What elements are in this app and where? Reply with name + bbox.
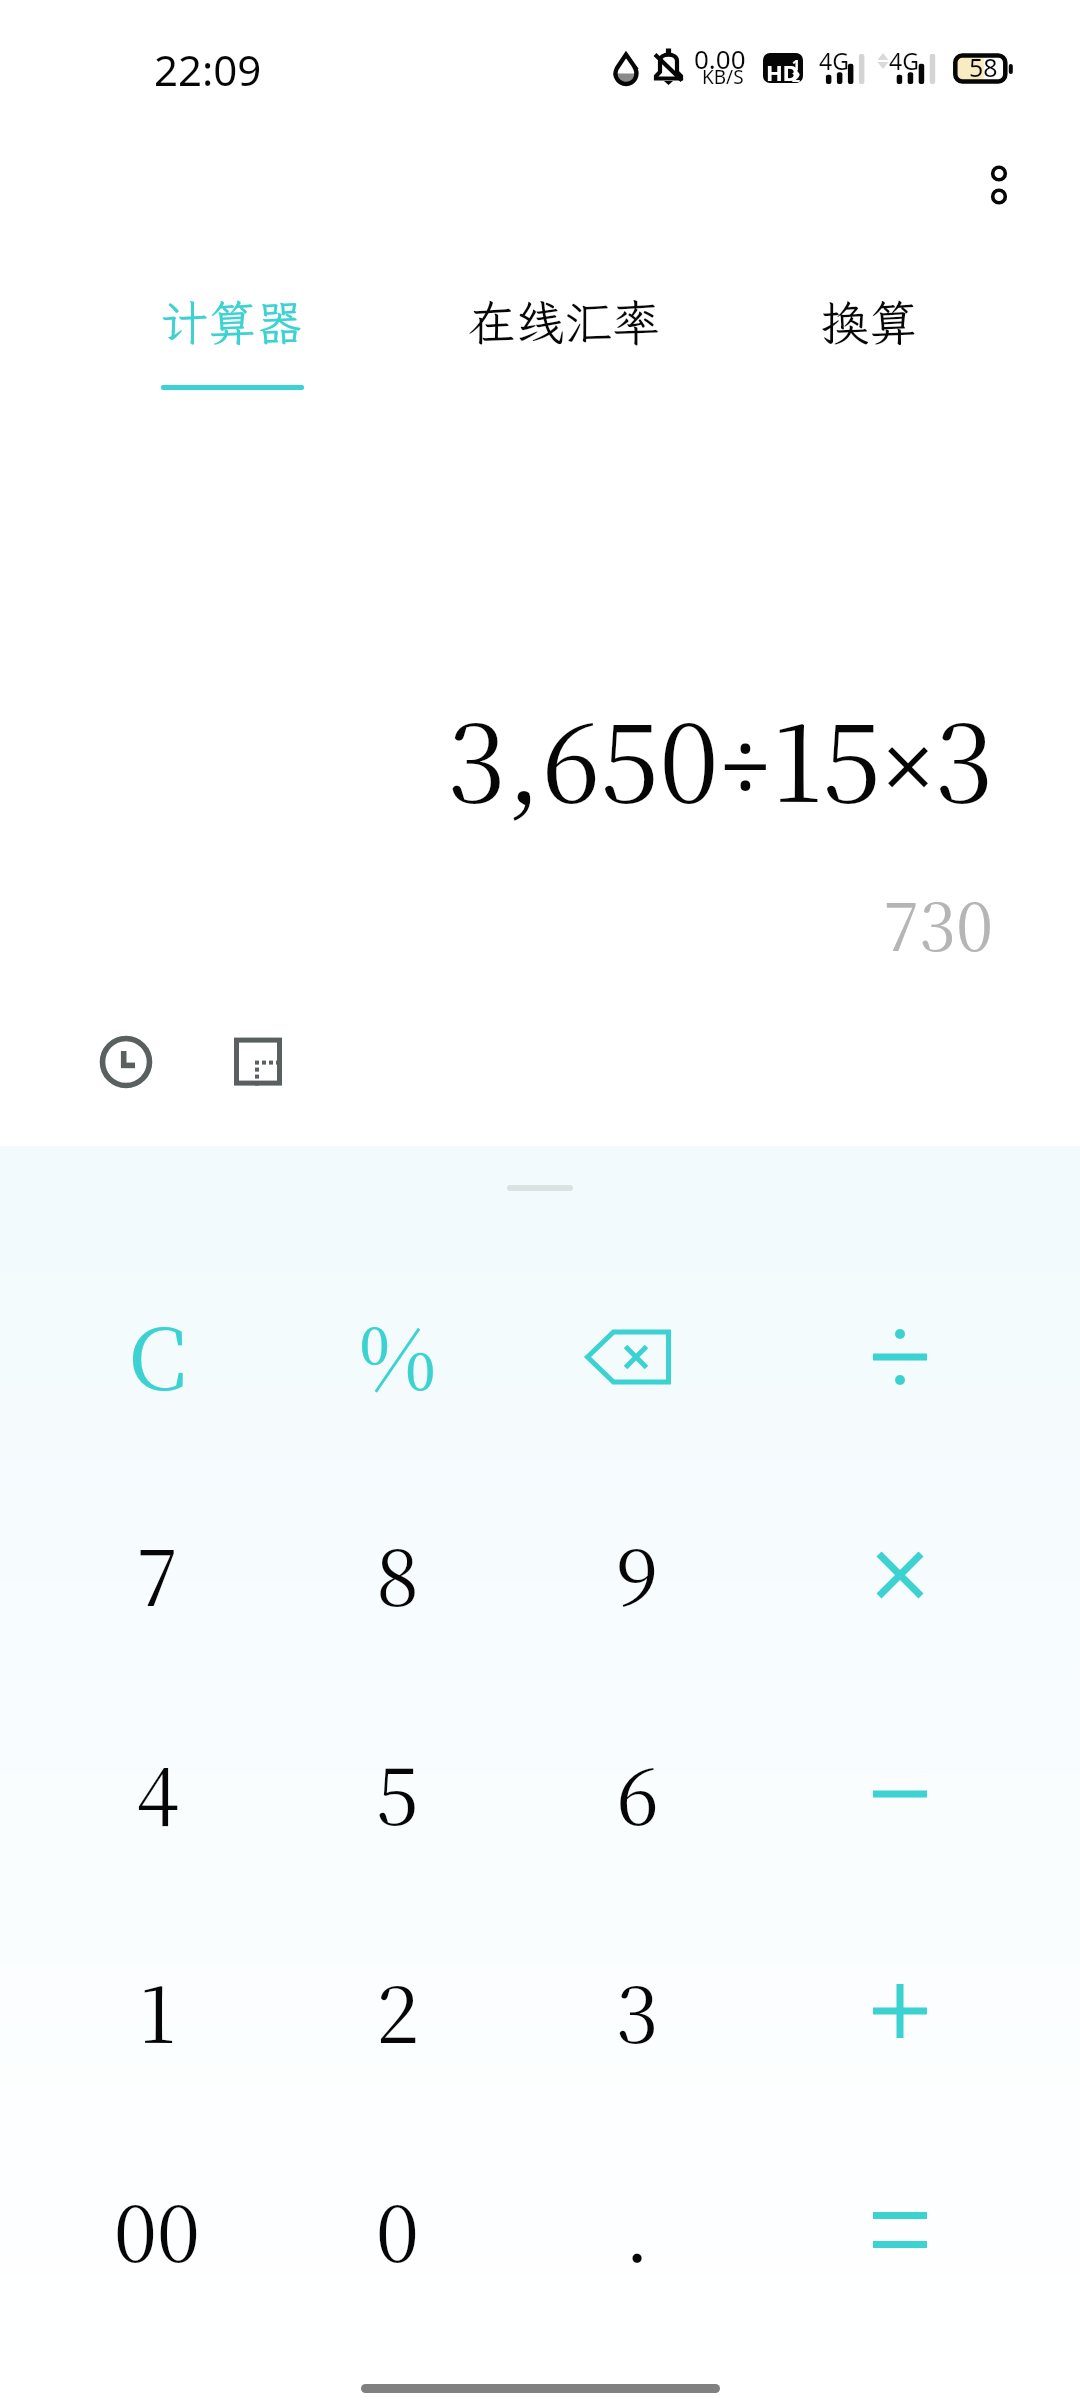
button[interactable]: More options [954,140,1044,230]
staticText: 9 [615,1517,659,1628]
staticText: 在线汇率 [468,290,661,353]
staticText: 1 [139,1954,176,2065]
button[interactable]: C [37,1244,277,1462]
staticText: 3 [616,1954,659,2065]
button[interactable]: Multiply [757,1466,1043,1684]
button[interactable]: 换算 [738,290,1000,420]
staticText: . [624,2173,650,2284]
staticText: 0.00 [694,41,746,76]
button[interactable]: 计算器 [78,290,386,420]
staticText: C [128,1292,187,1414]
staticText: 0 [376,2173,419,2284]
button[interactable]: 6 [517,1682,757,1900]
staticText: % [358,1292,437,1414]
staticText: 6 [616,1736,659,1847]
button[interactable]: 9 [517,1463,757,1681]
button[interactable]: 0 [277,2119,517,2337]
other: Equals [757,2121,1043,2339]
button[interactable]: 在线汇率 [387,290,741,420]
staticText: 换算 [821,290,918,353]
other: Divide [757,1248,1043,1466]
staticText: 58 [969,50,998,84]
staticText: 2 [792,67,801,83]
button[interactable]: 2 [277,1900,517,2118]
staticText: 22:09 [154,41,262,98]
staticText: KB/S [702,64,744,90]
button[interactable]: 1 [37,1900,277,2118]
button[interactable]: % [277,1244,517,1462]
staticText: 4G [889,45,919,76]
button[interactable]: History [66,1002,186,1122]
staticText: 2 [376,1954,419,2065]
staticText: 3,650÷15×3 [0,680,994,832]
other: Minus [757,1685,1043,1903]
other: Plus [757,1902,1043,2120]
button[interactable]: 8 [277,1463,517,1681]
button[interactable]: . [517,2119,757,2337]
staticText: 8 [376,1517,419,1628]
button[interactable]: Equals [757,2121,1043,2339]
staticText: HD [766,57,799,83]
staticText: 4 [136,1736,179,1847]
other: Multiply [757,1466,1043,1684]
staticText: 00 [114,2173,200,2284]
staticText: 7 [136,1517,179,1628]
button[interactable]: Plus [757,1902,1043,2120]
staticText: 计算器 [160,290,305,353]
button[interactable]: 4 [37,1682,277,1900]
other: Backspace [517,1248,757,1466]
button[interactable]: Backspace [517,1248,757,1466]
button[interactable]: 5 [277,1682,517,1900]
button[interactable]: 00 [37,2119,277,2337]
staticText: 5 [376,1736,419,1847]
button[interactable]: 7 [37,1463,277,1681]
button[interactable]: Floating window [198,1002,318,1122]
staticText: 4G [819,45,849,76]
staticText: 730 [0,875,993,970]
button[interactable]: Divide [757,1248,1043,1466]
staticText: 1 [792,55,801,74]
button[interactable]: Minus [757,1685,1043,1903]
button[interactable]: 3 [517,1900,757,2118]
